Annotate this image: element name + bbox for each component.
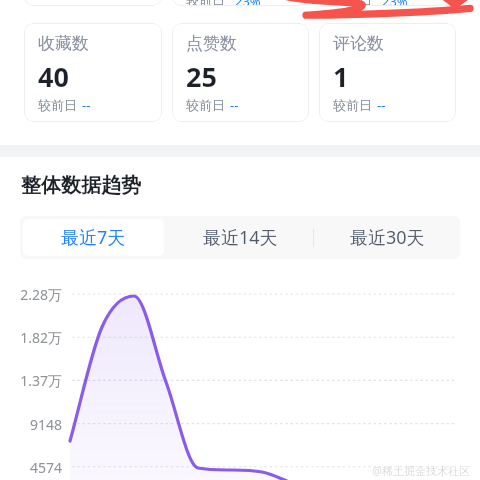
staticText: 1.37万: [0, 371, 62, 390]
button[interactable]: 最近30天: [314, 216, 460, 259]
button[interactable]: 最近7天: [23, 219, 164, 256]
staticText: 25: [186, 58, 217, 95]
staticText: --: [377, 96, 386, 114]
staticText: 4574: [0, 458, 62, 477]
staticText: 23%: [382, 0, 408, 6]
staticText: 较前日: [186, 97, 225, 113]
button[interactable]: 收藏数: [24, 23, 162, 122]
staticText: 23%: [235, 0, 261, 6]
staticText: 较前日: [186, 0, 225, 6]
button[interactable]: 较前日: [319, 0, 456, 6]
button[interactable]: [24, 0, 162, 6]
staticText: 点赞数: [186, 33, 237, 54]
staticText: @稀土掘金技术社区: [372, 463, 470, 478]
staticText: 评论数: [333, 33, 384, 54]
staticText: --: [230, 96, 239, 114]
button[interactable]: 较前日: [172, 0, 309, 6]
staticText: 1.82万: [0, 328, 62, 347]
staticText: 较前日: [333, 97, 372, 113]
staticText: 收藏数: [38, 33, 89, 54]
button[interactable]: 点赞数: [172, 23, 309, 122]
staticText: --: [82, 96, 91, 114]
staticText: 较前日: [333, 0, 372, 6]
staticText: 最近7天: [61, 225, 126, 250]
staticText: 最近30天: [350, 225, 425, 250]
staticText: 最近14天: [203, 225, 278, 250]
staticText: 40: [38, 58, 69, 95]
button[interactable]: 评论数: [319, 23, 456, 122]
staticText: 1: [333, 58, 349, 95]
button[interactable]: 最近14天: [167, 216, 313, 259]
staticText: 较前日: [38, 97, 77, 113]
staticText: 9148: [0, 415, 62, 434]
staticText: 整体数据趋势: [21, 173, 141, 198]
staticText: 2.28万: [0, 285, 62, 304]
